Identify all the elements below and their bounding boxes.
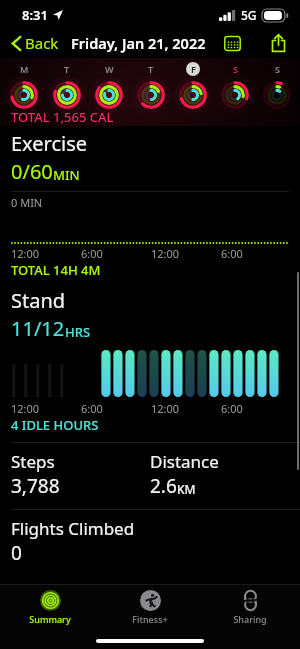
staticText: Exercise [11, 130, 88, 157]
staticText: 0/60 [11, 158, 53, 185]
staticText: 12:00 [151, 246, 180, 260]
staticText: Steps [11, 450, 55, 473]
staticText: M [20, 63, 29, 75]
staticText: Sharing [233, 613, 267, 625]
staticText: 2.6 [150, 473, 177, 499]
staticText: Summary [29, 613, 71, 625]
staticText: T [148, 63, 154, 75]
staticText: 12:00 [11, 246, 40, 260]
staticText: Fitness+ [132, 613, 168, 625]
staticText: F [191, 63, 196, 75]
button[interactable]: Flights Climbed [0, 517, 300, 566]
staticText: Friday, Jan 21, 2022 [71, 33, 206, 53]
staticText: 6:00 [221, 246, 243, 260]
staticText: 5G [241, 7, 257, 23]
button[interactable]: T [45, 58, 88, 126]
staticText: TOTAL 14H 4M [11, 261, 101, 279]
staticText: 6:00 [81, 401, 103, 415]
button[interactable]: W [88, 58, 130, 126]
staticText: W [105, 63, 114, 75]
staticText: MIN [53, 166, 80, 184]
button[interactable]: Calendar [220, 31, 245, 56]
button[interactable]: S [214, 58, 256, 126]
button[interactable]: Steps [11, 450, 150, 499]
staticText: TOTAL 1,565 CAL [11, 108, 114, 126]
button[interactable]: Exercise [0, 130, 300, 287]
staticText: 0 [11, 540, 22, 566]
button[interactable]: S [256, 58, 298, 126]
staticText: 4 IDLE HOURS [11, 416, 99, 434]
staticText: Stand [11, 287, 66, 314]
staticText: 6:00 [81, 246, 103, 260]
staticText: S [233, 63, 238, 75]
button[interactable]: M [2, 58, 45, 126]
staticText: 11/12 [11, 315, 65, 342]
staticText: KM [177, 481, 196, 497]
staticText: S [275, 63, 280, 75]
staticText: Flights Climbed [11, 517, 135, 540]
staticText: 8:31 [22, 6, 48, 24]
button[interactable]: F [172, 58, 214, 126]
button[interactable]: T [130, 58, 172, 126]
button[interactable]: Distance [150, 450, 289, 499]
staticText: HRS [65, 323, 91, 341]
staticText: 3,788 [11, 473, 60, 499]
staticText: T [64, 63, 70, 75]
button[interactable]: Summary [0, 585, 100, 633]
staticText: Distance [150, 450, 219, 473]
button[interactable]: Sharing [200, 585, 300, 633]
button[interactable]: Back [8, 30, 63, 56]
button[interactable]: Stand [0, 287, 300, 442]
staticText: 12:00 [11, 401, 40, 415]
staticText: Back [25, 33, 59, 53]
staticText: 12:00 [151, 401, 180, 415]
staticText: 0 MIN [11, 195, 43, 210]
staticText: 6:00 [221, 401, 243, 415]
button[interactable]: Share [267, 30, 290, 56]
button[interactable]: Fitness+ [100, 585, 200, 633]
